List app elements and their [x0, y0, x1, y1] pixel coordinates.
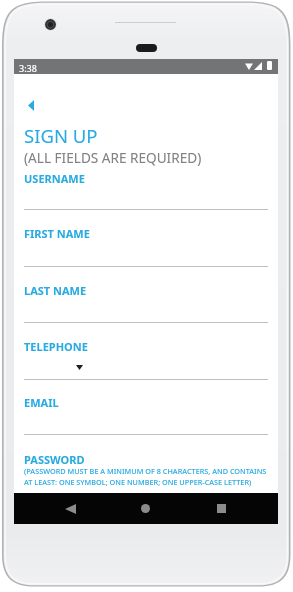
staticText: PASSWORD — [24, 452, 85, 467]
staticText: (PASSWORD MUST BE A MINIMUM OF 8 CHARACT… — [24, 466, 267, 476]
staticText: AT LEAST: ONE SYMBOL; ONE NUMBER; ONE UP… — [24, 477, 252, 487]
staticText: USERNAME — [24, 171, 85, 186]
staticText: LAST NAME — [24, 283, 87, 298]
staticText: 3:38 — [19, 62, 37, 74]
button[interactable]: Recent apps — [208, 493, 234, 524]
staticText: (ALL FIELDS ARE REQUIRED) — [24, 148, 202, 167]
staticText: SIGN UP — [24, 123, 98, 148]
staticText: FIRST NAME — [24, 226, 90, 241]
staticText: EMAIL — [24, 395, 59, 410]
staticText: TELEPHONE — [24, 339, 88, 354]
button[interactable]: Home — [132, 493, 158, 524]
button[interactable]: Back — [22, 95, 40, 116]
button[interactable]: Back — [57, 493, 83, 524]
